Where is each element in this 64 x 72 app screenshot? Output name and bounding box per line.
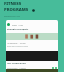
button[interactable]: Profile [32, 9, 35, 12]
staticText: HIIT CARDIO BURN [7, 62, 26, 65]
staticText: 12 workouts · 45 min [7, 42, 26, 44]
staticText: Strength & Mobility [7, 28, 29, 31]
button[interactable] [6, 33, 58, 40]
staticText: designed for you [4, 15, 20, 18]
staticText: PROGRAMS [4, 7, 29, 13]
button[interactable]: Today • Live [7, 23, 58, 26]
staticText: FITNESS [4, 1, 22, 7]
staticText: Build lean muscle at home [7, 45, 28, 47]
staticText: Today • Live [12, 24, 23, 26]
staticText: Intermediate · 8 weeks [7, 67, 26, 69]
